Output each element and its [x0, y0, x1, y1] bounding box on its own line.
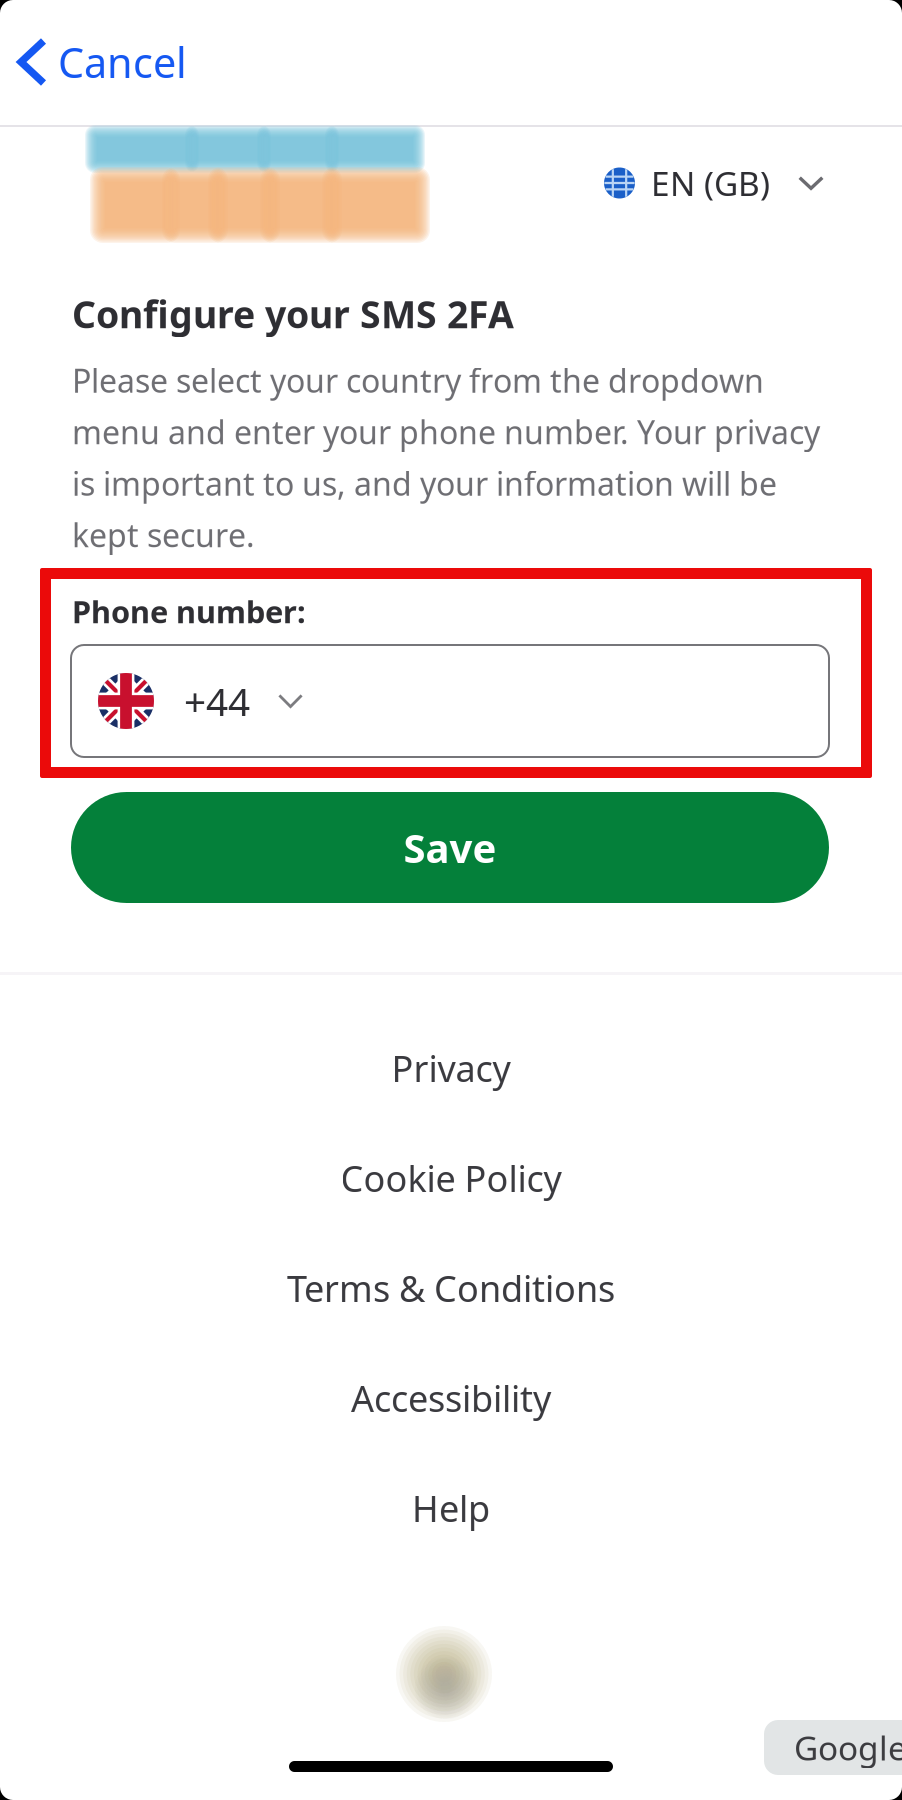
staticText: Terms & Conditions — [287, 1264, 615, 1312]
staticText: Accessibility — [351, 1374, 551, 1422]
staticText: Configure your SMS 2FA — [72, 289, 514, 339]
button[interactable]: Help — [0, 1453, 902, 1563]
staticText: Phone number: — [72, 591, 306, 632]
button[interactable]: Terms & Conditions — [0, 1233, 902, 1343]
staticText: EN (GB) — [651, 161, 770, 205]
staticText: Cancel — [58, 35, 187, 89]
staticText: Help — [412, 1484, 490, 1532]
button[interactable]: Save — [71, 792, 829, 903]
button[interactable]: Accessibility — [0, 1343, 902, 1453]
button[interactable]: Cookie Policy — [0, 1123, 902, 1233]
staticText: Cookie Policy — [340, 1154, 561, 1202]
button[interactable]: EN (GB) — [604, 137, 838, 229]
staticText: Save — [403, 821, 496, 874]
staticText: Privacy — [391, 1044, 510, 1092]
button[interactable]: Cancel — [0, 0, 300, 124]
staticText: +44 — [184, 675, 250, 727]
button[interactable]: Google C — [764, 1720, 902, 1775]
staticText: Please select your country from the drop… — [72, 359, 820, 556]
staticText: Google C — [794, 1725, 902, 1770]
button[interactable]: Privacy — [0, 1013, 902, 1123]
button[interactable]: +44 — [71, 645, 829, 757]
